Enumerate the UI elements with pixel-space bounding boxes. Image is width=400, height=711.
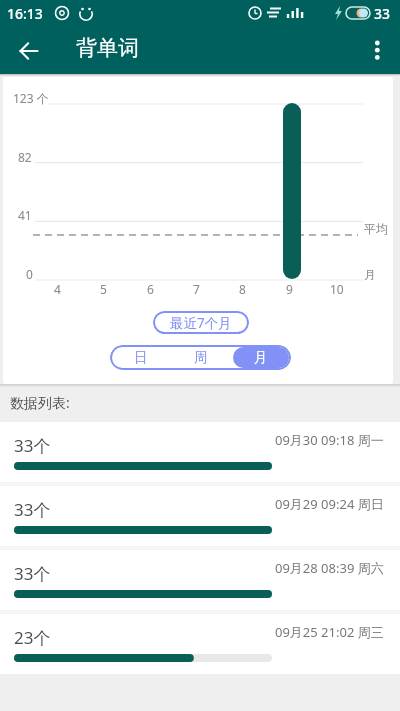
staticText: 33个 — [14, 562, 51, 585]
staticText: 7 — [193, 281, 200, 297]
staticText: 9 — [286, 281, 293, 297]
staticText: 33个 — [14, 434, 51, 457]
staticText: 背单词 — [76, 35, 139, 61]
staticText: 数据列表: — [10, 393, 70, 412]
staticText: 月 — [364, 267, 376, 282]
staticText: 周 — [194, 349, 208, 366]
staticText: 09月30 09:18 周一 — [275, 431, 384, 449]
button[interactable]: 日 — [110, 345, 171, 370]
staticText: 123 个 — [13, 90, 49, 106]
staticText: 82 — [18, 149, 32, 165]
staticText: 41 — [18, 207, 32, 223]
staticText: 6 — [147, 281, 154, 297]
button[interactable]: 周 — [171, 345, 231, 370]
staticText: 最近7个月 — [170, 314, 232, 332]
staticText: 09月29 09:24 周日 — [275, 495, 384, 513]
staticText: 10 — [330, 281, 344, 297]
button[interactable] — [0, 26, 56, 74]
staticText: 0 — [26, 266, 33, 282]
staticText: 月 — [254, 349, 268, 366]
staticText: 平均 — [364, 221, 388, 236]
staticText: 16:13 — [7, 4, 43, 23]
button[interactable]: 月 — [233, 347, 289, 368]
staticText: 8 — [239, 281, 246, 297]
staticText: 4 — [54, 281, 61, 297]
staticText: 09月25 21:02 周三 — [275, 623, 384, 641]
button[interactable]: 33个 — [0, 486, 400, 546]
button[interactable]: 最近7个月 — [153, 311, 249, 334]
button[interactable]: 33个 — [0, 422, 400, 482]
staticText: 5 — [100, 281, 107, 297]
staticText: 33 — [374, 4, 391, 23]
staticText: 09月28 08:39 周六 — [275, 559, 384, 577]
button[interactable]: 33个 — [0, 550, 400, 610]
staticText: 23个 — [14, 626, 51, 649]
button[interactable] — [352, 26, 400, 74]
staticText: 日 — [134, 349, 148, 366]
button[interactable]: 23个 — [0, 614, 400, 674]
staticText: 33个 — [14, 498, 51, 521]
